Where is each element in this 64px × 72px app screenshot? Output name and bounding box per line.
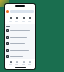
- button[interactable]: [6, 54, 34, 59]
- button[interactable]: Shortcut: [9, 17, 12, 22]
- button[interactable]: Shortcut: [15, 17, 18, 22]
- button[interactable]: Tab: [28, 61, 31, 65]
- button[interactable]: Tab: [22, 61, 25, 65]
- button[interactable]: [6, 35, 34, 40]
- button[interactable]: [6, 28, 34, 33]
- button[interactable]: Shortcut: [22, 17, 25, 22]
- button[interactable]: Shortcut: [28, 17, 31, 22]
- button[interactable]: [6, 48, 34, 53]
- button[interactable]: Tab: [9, 61, 12, 65]
- button[interactable]: Profile: [6, 10, 9, 13]
- button[interactable]: Tab: [15, 61, 18, 65]
- button[interactable]: [6, 41, 34, 46]
